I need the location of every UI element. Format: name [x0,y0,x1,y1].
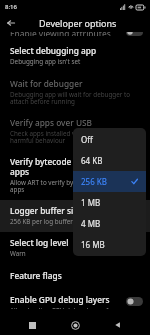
staticText: Off [81,134,138,145]
staticText: Wait for debugger [10,78,83,89]
staticText: Debugging app will wait for debugger to … [10,90,143,106]
staticText: 4 MB [81,218,138,229]
staticText: Check apps installed via ADB/ADT for har… [10,129,143,145]
staticText: Select log level [10,237,69,248]
button[interactable]: Back [3,15,18,30]
button[interactable]: 1 MB [73,192,146,213]
button[interactable]: Verify bytecode of debuggable apps [0,151,150,200]
button[interactable]: Toggle [126,297,143,306]
staticText: Select debugging app [10,45,97,56]
button[interactable]: Select log level [0,232,150,264]
staticText: Allow ART to verify bytecode of debuggab… [10,178,143,194]
staticText: 1 MB [81,197,138,208]
staticText: Enable GPU debug layers [10,294,110,305]
button[interactable]: 64 KB [73,150,146,171]
staticText: Feature flags [10,270,62,281]
staticText: Developer options [39,17,117,29]
staticText: 8:16 [5,3,17,11]
staticText: Logger buffer sizes [10,205,86,216]
staticText: 16 MB [81,239,138,250]
staticText: 256 KB [81,176,131,187]
button[interactable]: Enable viewing attributes [0,32,150,36]
staticText: Verify apps over USB [10,117,92,128]
button[interactable]: Select debugging app [0,40,150,73]
button[interactable]: 4 MB [73,213,146,234]
button[interactable]: Enable GPU debug layers [0,289,150,315]
button[interactable]: Verify apps over USB [0,112,150,151]
button[interactable]: Toggle [126,32,143,36]
staticText: Verify bytecode of debuggable apps [10,156,143,177]
staticText: 64 KB [81,155,138,166]
button[interactable]: Recents [21,315,43,335]
button[interactable]: Off [73,129,146,150]
button[interactable]: Wait for debugger [0,73,150,112]
staticText: 256 KB per log buffer [10,217,73,226]
staticText: Debugging app isn't set [10,57,81,66]
staticText: Enable viewing attributes [10,32,126,36]
button[interactable]: Back [107,315,129,335]
staticText: Allow loading GPU debug layers for debug… [10,306,122,309]
button[interactable]: Home [64,315,86,335]
button[interactable]: 256 KB [73,171,146,192]
button[interactable]: 16 MB [73,234,146,255]
button[interactable]: Logger buffer sizes [0,200,150,232]
staticText: Warn [10,249,26,258]
button[interactable]: Feature flags [0,264,150,289]
